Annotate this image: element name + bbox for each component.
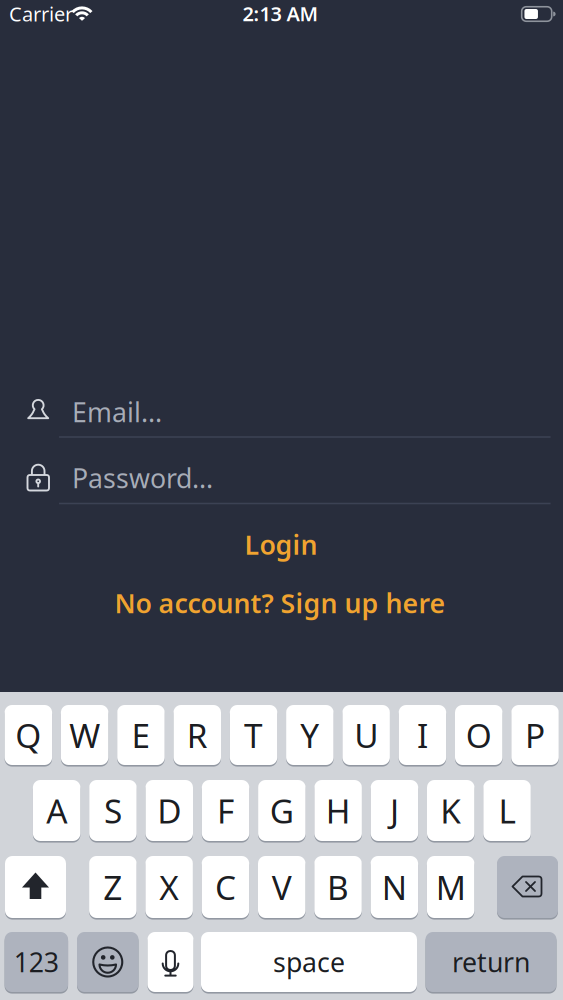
staticText: Password... — [72, 460, 213, 496]
button[interactable]: F — [202, 779, 249, 842]
button[interactable]: N — [371, 855, 418, 919]
button[interactable]: R — [173, 704, 221, 766]
staticText: F — [217, 788, 234, 833]
staticText: K — [440, 788, 461, 833]
button[interactable]: D — [145, 779, 193, 842]
button[interactable]: Delete — [497, 855, 558, 919]
button[interactable]: E — [117, 704, 165, 766]
staticText: H — [326, 788, 351, 833]
button[interactable]: I — [399, 704, 446, 766]
staticText: Z — [103, 865, 122, 909]
staticText: 123 — [14, 944, 59, 980]
staticText: Login — [244, 527, 317, 562]
button[interactable]: Email — [0, 383, 563, 439]
staticText: space — [273, 944, 345, 980]
button[interactable]: U — [342, 704, 390, 766]
button[interactable]: Emoji — [77, 931, 138, 993]
button[interactable]: J — [371, 779, 418, 842]
staticText: B — [327, 865, 349, 909]
staticText: I — [417, 713, 428, 757]
staticText: Carrier — [9, 0, 73, 27]
staticText: G — [270, 788, 294, 833]
staticText: C — [215, 865, 236, 909]
button[interactable]: P — [511, 704, 559, 766]
button[interactable]: K — [427, 779, 474, 842]
staticText: V — [272, 865, 292, 909]
button[interactable]: O — [455, 704, 502, 766]
button[interactable]: Y — [286, 704, 334, 766]
button[interactable]: Password — [0, 450, 563, 506]
staticText: E — [131, 713, 150, 757]
staticText: return — [452, 944, 530, 980]
button[interactable]: Z — [89, 855, 137, 919]
staticText: Q — [15, 713, 41, 757]
staticText: R — [187, 713, 208, 757]
button[interactable]: Shift — [5, 855, 66, 919]
staticText: X — [159, 865, 179, 909]
staticText: L — [499, 788, 516, 833]
staticText: S — [104, 788, 122, 833]
button[interactable]: M — [427, 855, 474, 919]
staticText: Email... — [72, 394, 162, 430]
button[interactable]: W — [61, 704, 108, 766]
button[interactable]: Login — [244, 527, 317, 562]
button[interactable]: L — [483, 779, 531, 842]
staticText: J — [390, 788, 399, 833]
button[interactable]: G — [258, 779, 306, 842]
staticText: P — [525, 713, 545, 757]
staticText: T — [244, 713, 263, 757]
staticText: D — [157, 788, 181, 833]
button[interactable]: A — [33, 779, 80, 842]
staticText: Y — [300, 713, 319, 757]
button[interactable]: B — [314, 855, 362, 919]
staticText: No account? Sign up here — [114, 585, 445, 621]
button[interactable]: return — [425, 931, 556, 993]
staticText: W — [69, 713, 100, 757]
button[interactable]: Dictate — [147, 931, 193, 993]
staticText: A — [46, 788, 67, 833]
staticText: O — [466, 713, 492, 757]
staticText: M — [436, 865, 466, 909]
button[interactable]: Q — [5, 704, 52, 766]
staticText: N — [382, 865, 407, 909]
button[interactable]: V — [258, 855, 305, 919]
button[interactable]: C — [202, 855, 249, 919]
button[interactable]: S — [89, 779, 137, 842]
button[interactable]: H — [314, 779, 362, 842]
button[interactable]: 123 — [5, 931, 68, 993]
button[interactable]: No account? Sign up here — [114, 585, 445, 621]
button[interactable]: space — [201, 931, 417, 993]
button[interactable]: X — [145, 855, 193, 919]
staticText: U — [354, 713, 378, 757]
button[interactable]: T — [230, 704, 277, 766]
staticText: 2:13 AM — [242, 0, 318, 27]
